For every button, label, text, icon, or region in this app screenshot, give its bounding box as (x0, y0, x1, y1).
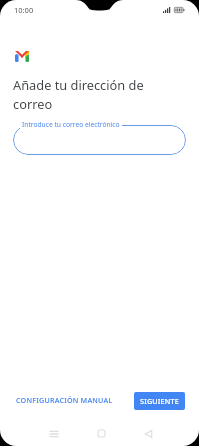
staticText: 10:00 (14, 5, 34, 15)
staticText: Introduce tu correo electrónico (22, 120, 120, 129)
staticText: CONFIGURACIÓN MANUAL (16, 395, 113, 405)
button[interactable]: Home (90, 422, 113, 445)
staticText: Añade tu dirección de correo (13, 76, 163, 113)
button[interactable]: Back (137, 422, 160, 445)
button[interactable] (13, 125, 186, 155)
button[interactable]: Recent apps (42, 422, 65, 445)
button[interactable]: SIGUIENTE (134, 392, 185, 410)
button[interactable]: CONFIGURACIÓN MANUAL (10, 392, 119, 408)
staticText: SIGUIENTE (140, 396, 179, 406)
